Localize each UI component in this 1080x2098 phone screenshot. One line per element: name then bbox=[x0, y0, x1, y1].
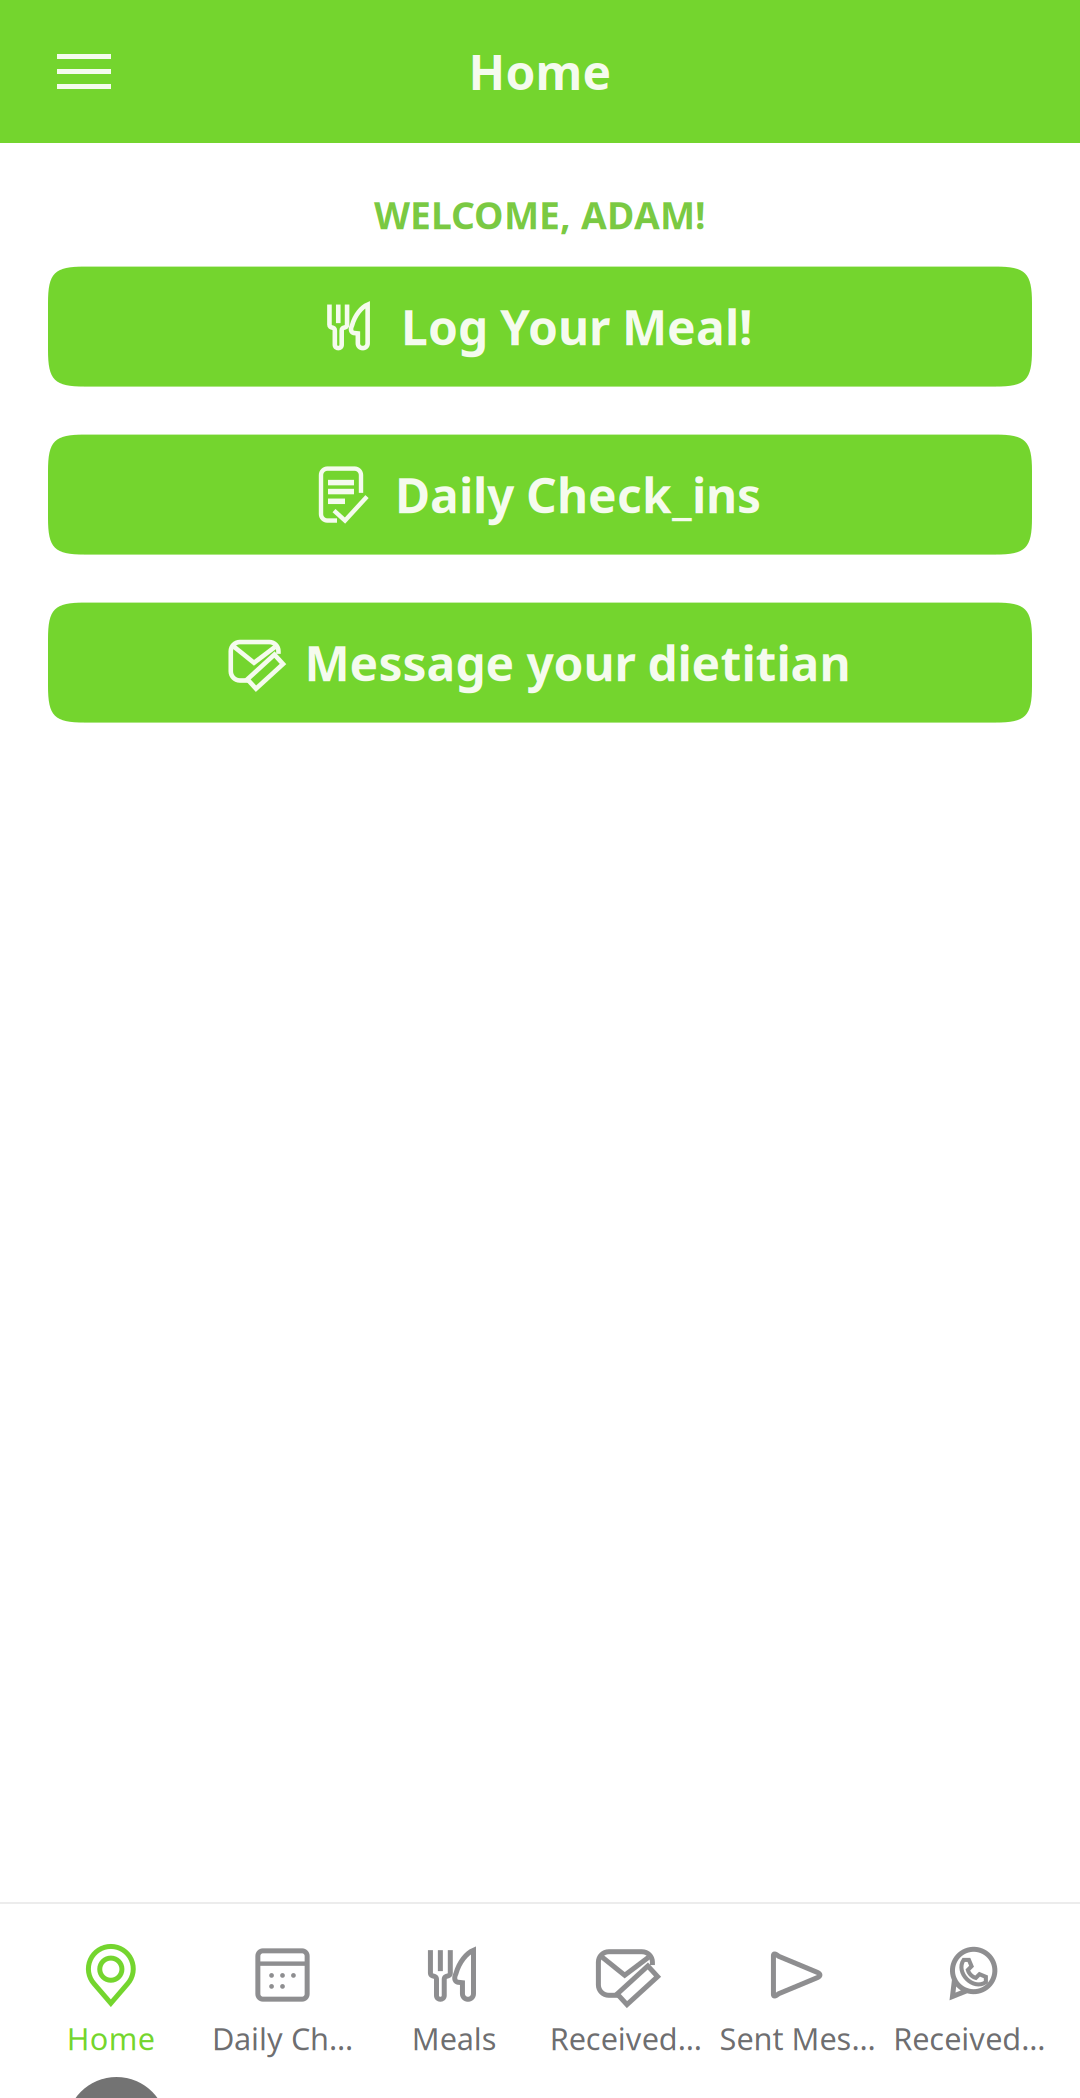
staticText: Home bbox=[468, 40, 611, 103]
staticText: WELCOME, ADAM! bbox=[374, 190, 706, 240]
staticText: Daily Ch... bbox=[212, 2018, 353, 2059]
staticText: Received... bbox=[550, 2018, 702, 2059]
staticText: Sent Mes... bbox=[719, 2018, 875, 2059]
button[interactable]: Daily Check_ins bbox=[48, 435, 1032, 555]
button[interactable]: Received... bbox=[540, 1942, 712, 2059]
button[interactable]: Home bbox=[25, 1942, 197, 2059]
button[interactable]: Meals bbox=[368, 1942, 540, 2059]
staticText: Meals bbox=[412, 2018, 497, 2059]
staticText: Received... bbox=[893, 2018, 1045, 2059]
staticText: Home bbox=[67, 2018, 155, 2059]
button[interactable]: Menu bbox=[36, 22, 132, 120]
staticText: Log Your Meal! bbox=[401, 295, 753, 358]
button[interactable]: Daily Ch... bbox=[197, 1942, 368, 2059]
button[interactable]: Log Your Meal! bbox=[48, 267, 1032, 387]
button[interactable]: Sent Mes... bbox=[712, 1942, 883, 2059]
staticText: Message your dietitian bbox=[304, 631, 850, 694]
staticText: Daily Check_ins bbox=[395, 463, 761, 526]
button[interactable]: Message your dietitian bbox=[48, 603, 1032, 723]
button[interactable]: Received... bbox=[883, 1942, 1055, 2059]
